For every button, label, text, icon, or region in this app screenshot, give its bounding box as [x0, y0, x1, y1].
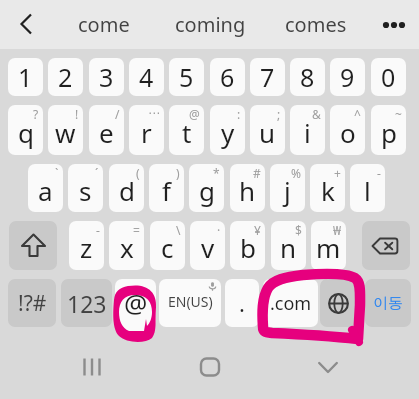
staticText: ˋ [55, 165, 59, 181]
staticText: ^ [354, 106, 361, 122]
button[interactable]: 이동 [365, 279, 411, 327]
button[interactable]: + [310, 164, 345, 212]
button[interactable]: 2 [48, 58, 83, 96]
staticText: i [304, 115, 311, 150]
button[interactable]: ^ [330, 105, 365, 155]
staticText: u [259, 115, 276, 150]
staticText: # [253, 165, 261, 181]
button[interactable]: Home [188, 350, 232, 384]
button[interactable]: \ [150, 221, 185, 270]
button[interactable]: ? [8, 105, 43, 155]
staticText: @ [189, 106, 200, 122]
button[interactable]: Change keyboard language [320, 279, 361, 327]
button[interactable]: ₩ [311, 221, 346, 270]
button[interactable]: / [89, 105, 124, 155]
button[interactable]: come [52, 5, 156, 43]
staticText: 1 [18, 60, 33, 94]
button[interactable]: @ [115, 279, 156, 327]
button[interactable]: ⋯ [129, 105, 164, 155]
button[interactable]: ( [109, 164, 144, 212]
staticText: @ [124, 285, 148, 320]
staticText: : [237, 106, 241, 122]
button[interactable]: 7 [250, 58, 285, 96]
staticText: - [96, 222, 100, 238]
staticText: ~ [395, 106, 402, 122]
button[interactable]: More options [375, 5, 413, 43]
button[interactable]: 9 [330, 58, 365, 96]
staticText: + [334, 165, 341, 181]
button[interactable]: = [109, 221, 144, 270]
button[interactable]: 4 [129, 58, 164, 96]
staticText: & [312, 106, 321, 122]
button[interactable]: - [350, 164, 385, 212]
staticText: 0 [381, 60, 396, 94]
button[interactable]: Shift [9, 221, 57, 270]
staticText: EN(US) [168, 292, 213, 311]
button[interactable]: Previous suggestions [6, 5, 44, 43]
button[interactable]: EN(US) [159, 279, 221, 327]
button[interactable]: ! [48, 105, 83, 155]
staticText: y [221, 115, 235, 150]
staticText: % [291, 165, 301, 181]
button[interactable]: - [69, 221, 104, 270]
staticText: a [38, 173, 53, 208]
button[interactable]: 0 [371, 58, 406, 96]
button[interactable]: 123 [61, 279, 112, 327]
button[interactable]: * [189, 164, 224, 212]
staticText: ₩ [333, 222, 342, 238]
staticText: - [377, 165, 381, 181]
button[interactable]: Backspace [362, 221, 410, 270]
staticText: t [182, 115, 192, 150]
staticText: e [99, 115, 114, 150]
staticText: n [280, 230, 297, 265]
button[interactable]: ˊ [68, 164, 103, 212]
staticText: z [80, 230, 93, 265]
staticText: 4 [139, 60, 154, 94]
staticText: @ [126, 288, 146, 318]
staticText: c [161, 230, 174, 265]
staticText: w [55, 115, 76, 150]
staticText: 이동 [373, 294, 403, 313]
staticText: / [115, 106, 120, 122]
staticText: ! [75, 106, 79, 122]
staticText: x [120, 230, 134, 265]
button[interactable]: % [270, 164, 305, 212]
staticText: ? [33, 106, 39, 122]
button[interactable]: .com [263, 279, 318, 327]
staticText: * [213, 165, 220, 181]
button[interactable]: 5 [169, 58, 204, 96]
button[interactable]: Recent apps [70, 350, 114, 384]
staticText: ( [136, 165, 140, 181]
button[interactable]: !?# [8, 279, 56, 327]
button[interactable]: comes [264, 5, 368, 43]
button[interactable]: 8 [290, 58, 325, 96]
staticText: . [239, 288, 245, 318]
button[interactable]: ; [250, 105, 285, 155]
staticText: 8 [300, 60, 315, 94]
staticText: m [316, 230, 341, 265]
button[interactable]: Hide keyboard [306, 350, 350, 384]
button[interactable]: $ [271, 221, 306, 270]
staticText: ⋯ [148, 106, 160, 120]
button[interactable]: ) [149, 164, 184, 212]
staticText: 7 [260, 60, 275, 94]
staticText: p [381, 115, 397, 150]
button[interactable]: 3 [89, 58, 124, 96]
staticText: ¥ [254, 222, 261, 238]
button[interactable]: : [210, 105, 245, 155]
button[interactable]: ¥ [230, 221, 265, 270]
staticText: d [119, 173, 135, 208]
button[interactable]: . [225, 279, 259, 327]
button[interactable]: # [230, 164, 265, 212]
button[interactable]: @ [169, 105, 204, 155]
button[interactable]: ~ [371, 105, 406, 155]
button[interactable]: · [190, 221, 225, 270]
button[interactable]: ˋ [28, 164, 63, 212]
button[interactable]: 1 [8, 58, 43, 96]
staticText: q [18, 115, 34, 150]
button[interactable]: coming [158, 5, 262, 43]
button[interactable]: & [290, 105, 325, 155]
staticText: 9 [340, 60, 355, 94]
staticText: · [217, 222, 221, 238]
button[interactable]: 6 [210, 58, 245, 96]
